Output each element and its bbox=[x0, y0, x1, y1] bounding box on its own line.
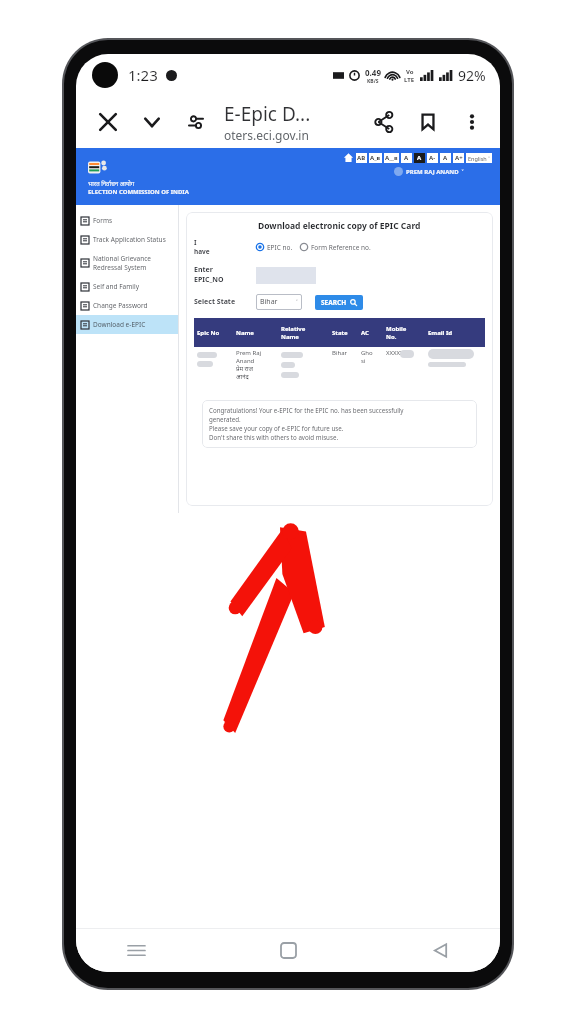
staticText: A bbox=[417, 154, 422, 162]
staticText: 1:23 bbox=[128, 65, 158, 85]
staticText: Change Password bbox=[93, 301, 148, 310]
button[interactable]: Bookmark bbox=[406, 100, 450, 144]
button[interactable]: Download e-EPIC bbox=[76, 315, 178, 334]
staticText: Name bbox=[236, 329, 254, 337]
button[interactable]: More options bbox=[450, 100, 494, 144]
staticText: KB/S bbox=[367, 78, 379, 85]
staticText: XXXXX bbox=[386, 349, 404, 357]
staticText: National Grievance Redressal System bbox=[93, 254, 151, 272]
staticText: Gho si bbox=[361, 349, 373, 365]
staticText: Form Reference no. bbox=[311, 243, 371, 252]
staticText: English ˅ bbox=[468, 155, 490, 162]
staticText: ELECTION COMMISSION OF INDIA bbox=[88, 188, 189, 196]
staticText: Track Application Status bbox=[93, 235, 166, 244]
staticText: Forms bbox=[93, 216, 113, 225]
staticText: Download e-EPIC bbox=[93, 320, 146, 329]
staticText: भारत निर्वाचन आयोग bbox=[88, 180, 135, 188]
button[interactable]: Bihar bbox=[256, 294, 302, 310]
staticText: LTE bbox=[404, 76, 415, 84]
staticText: Vo bbox=[406, 68, 414, 76]
staticText: have bbox=[194, 247, 210, 256]
staticText: Prem Raj Anand प्रेम राज आनंद bbox=[236, 349, 262, 381]
staticText: 0.49 bbox=[365, 67, 381, 78]
staticText: A+ bbox=[455, 154, 463, 162]
staticText: 92% bbox=[458, 66, 486, 85]
button[interactable]: Change Password bbox=[76, 296, 178, 315]
staticText: Enter bbox=[194, 265, 213, 275]
staticText: A bbox=[443, 154, 448, 162]
button[interactable]: Self and Family bbox=[76, 277, 178, 296]
button[interactable]: Track Application Status bbox=[76, 230, 178, 249]
staticText: A_в bbox=[370, 154, 381, 162]
staticText: AВ bbox=[357, 154, 366, 162]
button[interactable]: National Grievance Redressal System bbox=[76, 249, 178, 277]
staticText: A bbox=[404, 154, 409, 162]
staticText: Select State bbox=[194, 297, 236, 307]
button[interactable]: SEARCH bbox=[315, 295, 363, 310]
staticText: Bihar bbox=[332, 349, 348, 357]
staticText: ˅ bbox=[296, 298, 298, 306]
staticText: oters.eci.gov.in bbox=[224, 127, 309, 143]
staticText: A__в bbox=[385, 154, 398, 162]
button[interactable]: Recent apps bbox=[116, 930, 156, 970]
staticText: I bbox=[194, 238, 197, 247]
staticText: EPIC no. bbox=[267, 243, 293, 252]
button[interactable]: Page settings bbox=[174, 100, 218, 144]
staticText: AC bbox=[361, 329, 369, 337]
staticText: E-Epic D... bbox=[224, 101, 311, 127]
staticText: Download electronic copy of EPIC Card bbox=[258, 220, 421, 232]
button[interactable]: Forms bbox=[76, 211, 178, 230]
staticText: Email Id bbox=[428, 329, 453, 337]
staticText: SEARCH bbox=[321, 298, 347, 307]
button[interactable]: Share bbox=[362, 100, 406, 144]
staticText: Mobile No. bbox=[386, 325, 407, 341]
staticText: Congratulations! Your e-EPIC for the EPI… bbox=[209, 406, 404, 442]
staticText: EPIC_NO bbox=[194, 275, 224, 285]
staticText: A- bbox=[429, 154, 436, 162]
button[interactable]: Close bbox=[86, 100, 130, 144]
button[interactable]: Home bbox=[268, 930, 308, 970]
staticText: Epic No bbox=[197, 329, 220, 337]
staticText: Relative Name bbox=[281, 325, 306, 341]
button[interactable]: Download bbox=[130, 100, 174, 144]
staticText: State bbox=[332, 329, 348, 337]
staticText: PREM RAJ ANAND ˅ bbox=[406, 168, 464, 176]
staticText: Bihar bbox=[260, 297, 278, 307]
button[interactable]: Back bbox=[420, 930, 460, 970]
staticText: Self and Family bbox=[93, 282, 139, 291]
